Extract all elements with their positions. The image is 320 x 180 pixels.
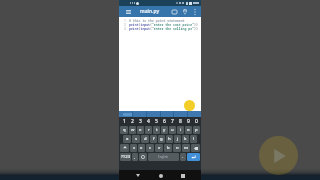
button[interactable]: w	[129, 126, 136, 134]
button[interactable]: c	[146, 144, 154, 152]
staticText: print(input("enter the selling pr"))	[129, 27, 198, 31]
button[interactable]: Preview	[169, 7, 179, 17]
button[interactable]: 2	[128, 117, 136, 125]
staticText: print(input("enter the cost price"))	[129, 23, 198, 27]
staticText: e	[139, 127, 142, 133]
button[interactable]: Emoji	[139, 153, 147, 161]
staticText: k	[184, 136, 187, 142]
staticText: p	[195, 127, 198, 133]
staticText: 3	[139, 118, 142, 125]
button[interactable]: i	[177, 126, 184, 134]
staticText: c	[149, 145, 152, 151]
button[interactable]: k	[182, 135, 189, 143]
button[interactable]: n	[173, 144, 181, 152]
staticText: v	[158, 145, 161, 151]
staticText: # this is the print statement	[129, 19, 185, 23]
button[interactable]: 1	[120, 117, 128, 125]
button[interactable]: b	[164, 144, 172, 152]
button[interactable]: z	[130, 144, 137, 152]
staticText: ,	[134, 154, 136, 160]
staticText: s	[135, 136, 138, 142]
button[interactable]: Suggestion	[123, 113, 133, 116]
button[interactable]: Location	[180, 7, 190, 17]
staticText: f	[153, 136, 155, 142]
staticText: ?123	[121, 154, 131, 160]
staticText: 6	[163, 118, 166, 125]
button[interactable]: Recents	[178, 171, 187, 180]
button[interactable]: Backspace	[191, 144, 200, 152]
button[interactable]: h	[166, 135, 173, 143]
button[interactable]: Shift	[120, 144, 129, 152]
button[interactable]: 5	[152, 117, 160, 125]
staticText: 1	[123, 118, 126, 125]
button[interactable]: r	[145, 126, 152, 134]
button[interactable]: j	[174, 135, 181, 143]
button[interactable]: 3	[136, 117, 144, 125]
button[interactable]: q	[120, 126, 128, 134]
staticText: u	[171, 127, 174, 133]
button[interactable]: a	[123, 135, 131, 143]
staticText: d	[144, 136, 147, 142]
staticText: t	[156, 127, 158, 133]
staticText: j	[177, 136, 179, 142]
staticText: i	[180, 127, 182, 133]
button[interactable]: x	[138, 144, 145, 152]
staticText: 2	[124, 23, 126, 27]
button[interactable]: m	[182, 144, 190, 152]
staticText: 9	[187, 118, 190, 125]
staticText: z	[133, 145, 135, 151]
staticText: g	[160, 136, 163, 142]
button[interactable]: 4	[144, 117, 152, 125]
staticText: w	[131, 127, 135, 133]
button[interactable]: Play	[259, 136, 298, 175]
button[interactable]: u	[169, 126, 176, 134]
button[interactable]: s	[132, 135, 140, 143]
staticText: r	[148, 127, 150, 133]
button[interactable]: More options	[191, 8, 199, 16]
staticText: q	[123, 127, 126, 133]
button[interactable]: Back	[133, 171, 142, 180]
staticText: main.py	[140, 8, 160, 15]
staticText: b	[167, 145, 170, 151]
button[interactable]: 8	[176, 117, 184, 125]
staticText: English	[158, 155, 169, 159]
staticText: n	[176, 145, 179, 151]
button[interactable]: Enter	[187, 153, 200, 161]
button[interactable]: f	[150, 135, 157, 143]
staticText: h	[168, 136, 171, 142]
staticText: 1	[124, 19, 126, 23]
staticText: 3	[124, 27, 126, 31]
staticText: 8	[179, 118, 182, 125]
button[interactable]: 9	[184, 117, 192, 125]
button[interactable]: .	[180, 153, 186, 161]
button[interactable]: Space	[148, 153, 179, 161]
staticText: o	[187, 127, 190, 133]
button[interactable]: l	[190, 135, 197, 143]
button[interactable]: Home	[156, 171, 165, 180]
button[interactable]: Menu	[124, 8, 132, 16]
button[interactable]: 6	[160, 117, 168, 125]
button[interactable]: o	[185, 126, 192, 134]
staticText: 5	[155, 118, 158, 125]
staticText: x	[140, 145, 143, 151]
button[interactable]: p	[193, 126, 200, 134]
button[interactable]: d	[141, 135, 149, 143]
staticText: a	[126, 136, 129, 142]
button[interactable]: v	[155, 144, 163, 152]
button[interactable]: e	[137, 126, 144, 134]
staticText: 7	[171, 118, 174, 125]
staticText: .	[182, 154, 184, 160]
staticText: 0	[195, 118, 198, 125]
button[interactable]: Run code	[184, 100, 195, 111]
button[interactable]: t	[153, 126, 160, 134]
button[interactable]: ?123	[120, 153, 131, 161]
staticText: l	[193, 136, 195, 142]
button[interactable]: 0	[192, 117, 200, 125]
staticText: 2	[131, 118, 134, 125]
button[interactable]: ,	[132, 153, 138, 161]
button[interactable]: 7	[168, 117, 176, 125]
button[interactable]: g	[158, 135, 165, 143]
staticText: m	[184, 145, 188, 151]
staticText: 4	[147, 118, 150, 125]
button[interactable]: y	[161, 126, 168, 134]
